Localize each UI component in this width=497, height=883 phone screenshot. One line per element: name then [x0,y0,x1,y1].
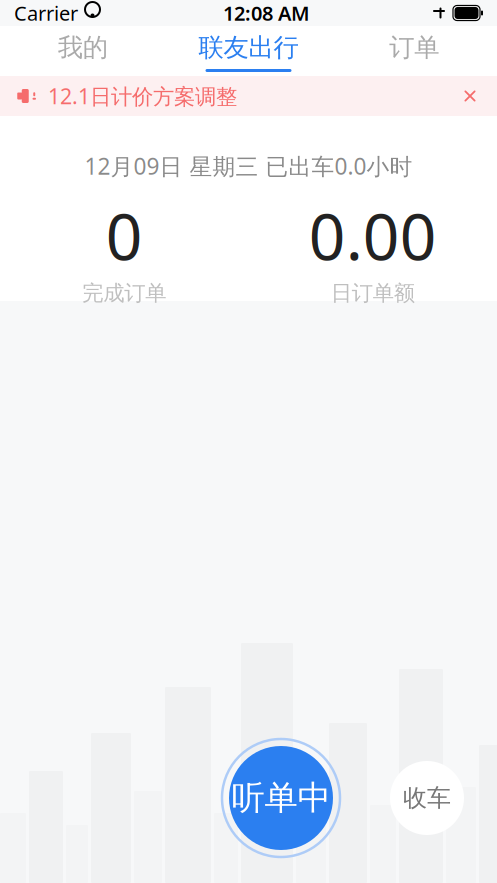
staticText: 0 [106,193,143,278]
button[interactable]: 我的 [0,26,166,76]
button[interactable]: 听单中 [220,737,342,859]
button[interactable]: 联友出行 [166,26,331,76]
staticText: 12月09日 星期三 已出车0.0小时 [84,151,412,181]
staticText: 听单中 [231,777,330,818]
staticText: 12:08 AM [223,0,310,26]
staticText: Carrier [14,0,78,26]
button[interactable]: 关闭公告 [451,77,489,115]
button[interactable]: 订单 [331,26,497,76]
staticText: 完成订单 [82,280,166,306]
staticText: 12.1日计价方案调整 [48,82,237,110]
staticText: 收车 [403,783,451,813]
staticText: 日订单额 [331,280,415,306]
staticText: 0.00 [309,193,437,278]
staticText: 我的 [58,32,108,63]
button[interactable]: 收车 [390,761,464,835]
staticText: 联友出行 [198,32,298,63]
staticText: 订单 [389,32,439,63]
